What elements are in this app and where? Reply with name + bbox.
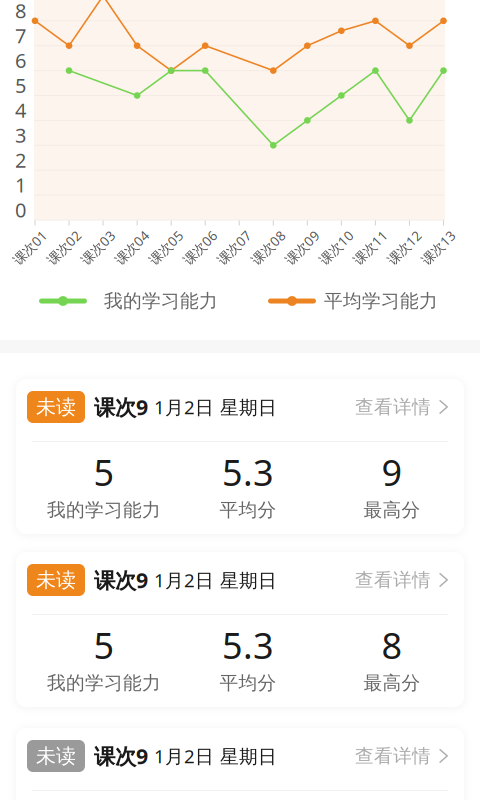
staticText: 查看详情 [355, 395, 431, 418]
staticText: 5.3 [222, 621, 274, 669]
staticText: 课次06 [179, 239, 221, 256]
staticText: 课次9 [94, 393, 148, 421]
staticText: 1月2日 星期日 [154, 568, 277, 592]
staticText: 9 [381, 448, 402, 496]
staticText: 查看详情 [355, 744, 431, 767]
staticText: 6 [15, 47, 26, 74]
staticText: 课次02 [43, 239, 85, 256]
staticText: 课次07 [213, 239, 255, 256]
staticText: 4 [15, 97, 26, 123]
staticText: 我的学习能力 [104, 289, 218, 312]
staticText: 1月2日 星期日 [154, 744, 277, 768]
staticText: 0 [15, 196, 26, 223]
staticText: 平均分 [219, 498, 276, 521]
staticText: 5 [93, 621, 114, 669]
staticText: 未读 [36, 395, 76, 419]
button[interactable]: 未读 [16, 379, 464, 534]
staticText: 3 [15, 122, 26, 148]
staticText: 未读 [36, 744, 76, 768]
staticText: 5.3 [222, 448, 274, 496]
staticText: 课次03 [77, 239, 119, 256]
staticText: 1 [15, 171, 26, 198]
staticText: 课次08 [247, 239, 289, 256]
staticText: 我的学习能力 [47, 671, 161, 694]
staticText: 课次04 [111, 239, 153, 256]
staticText: 平均分 [219, 671, 276, 694]
button[interactable]: 未读 [16, 552, 464, 707]
staticText: 平均学习能力 [324, 289, 438, 312]
staticText: 最高分 [363, 498, 420, 521]
staticText: 我的学习能力 [47, 498, 161, 521]
staticText: 课次01 [9, 239, 51, 256]
staticText: 课次12 [383, 239, 425, 256]
staticText: 课次09 [281, 239, 323, 256]
staticText: 5 [15, 72, 26, 98]
staticText: 最高分 [363, 671, 420, 694]
staticText: 5 [93, 448, 114, 496]
staticText: 课次11 [349, 239, 391, 256]
staticText: 7 [15, 22, 26, 49]
staticText: 未读 [36, 568, 76, 592]
staticText: 8 [381, 621, 402, 669]
staticText: 2 [15, 147, 26, 173]
button[interactable]: 未读 [16, 728, 464, 800]
staticText: 1月2日 星期日 [154, 395, 277, 419]
staticText: 8 [15, 0, 26, 24]
staticText: 课次9 [94, 566, 148, 594]
staticText: 课次05 [145, 239, 187, 256]
staticText: 课次9 [94, 742, 148, 770]
staticText: 课次10 [315, 239, 357, 256]
staticText: 课次13 [417, 239, 459, 256]
staticText: 查看详情 [355, 568, 431, 591]
